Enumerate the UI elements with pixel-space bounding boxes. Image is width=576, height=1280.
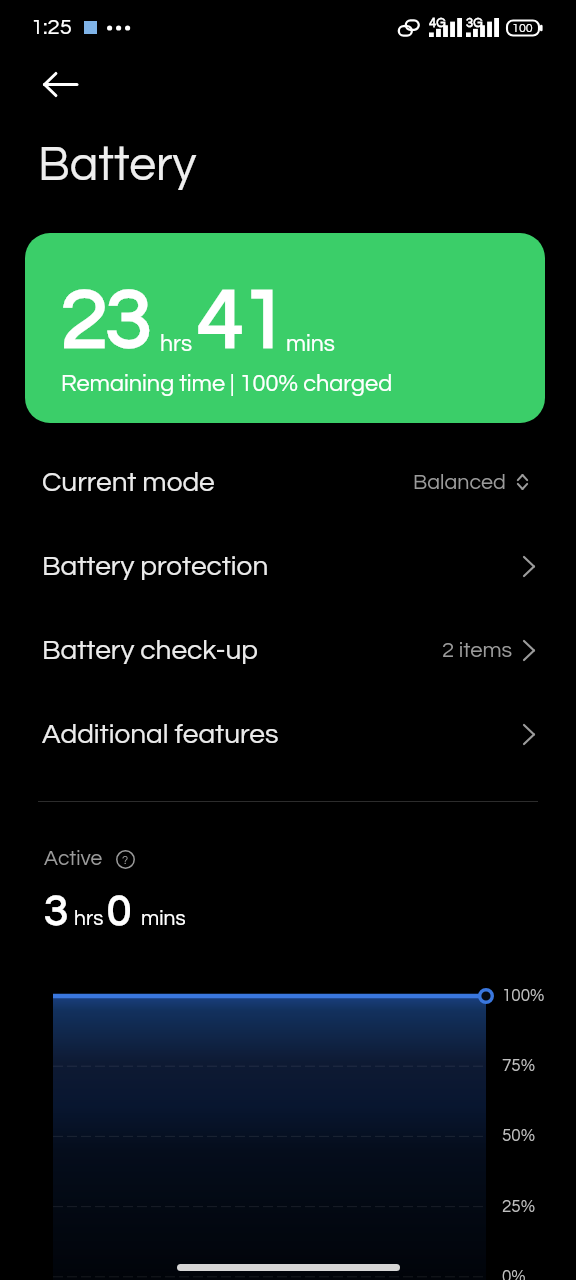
staticText: 2 items — [442, 639, 513, 662]
staticText: 100% — [502, 987, 545, 1005]
staticText: Remaining time | 100% charged — [61, 372, 393, 396]
staticText: 3G — [466, 16, 483, 29]
button[interactable]: Additional features — [0, 692, 576, 776]
button[interactable]: Battery check-up — [0, 608, 576, 692]
staticText: 3 — [44, 889, 68, 934]
staticText: 1:25 — [31, 16, 72, 39]
staticText: 41 — [197, 277, 286, 365]
staticText: 75% — [502, 1057, 536, 1075]
staticText: 100 — [512, 22, 533, 35]
staticText: Battery — [38, 141, 197, 190]
staticText: ? — [122, 854, 129, 866]
staticText: Current mode — [42, 468, 215, 497]
staticText: 50% — [502, 1127, 536, 1145]
staticText: Active — [44, 848, 103, 870]
button[interactable]: 23 — [25, 233, 545, 423]
button[interactable]: Battery protection — [0, 524, 576, 608]
staticText: hrs — [74, 908, 104, 930]
button[interactable]: Help — [116, 850, 135, 869]
staticText: 4G — [429, 16, 446, 29]
staticText: mins — [141, 908, 186, 930]
staticText: mins — [286, 332, 335, 356]
staticText: 0 — [107, 889, 131, 934]
staticText: Additional features — [42, 720, 279, 749]
staticText: Battery protection — [42, 552, 269, 581]
staticText: Balanced — [413, 471, 506, 493]
staticText: hrs — [160, 332, 193, 356]
staticText: 25% — [502, 1198, 536, 1216]
staticText: 23 — [61, 277, 150, 365]
button[interactable]: Back — [36, 60, 84, 108]
staticText: Battery check-up — [42, 636, 258, 665]
button[interactable]: Current mode — [0, 440, 576, 524]
staticText: 0% — [502, 1268, 526, 1280]
